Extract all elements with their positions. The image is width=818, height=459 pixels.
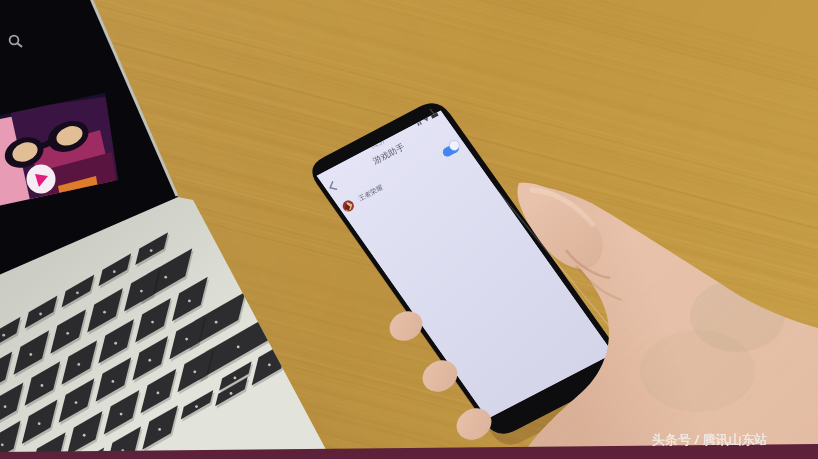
button[interactable]: Photo of a phone held in a hand beside a… — [0, 0, 818, 459]
